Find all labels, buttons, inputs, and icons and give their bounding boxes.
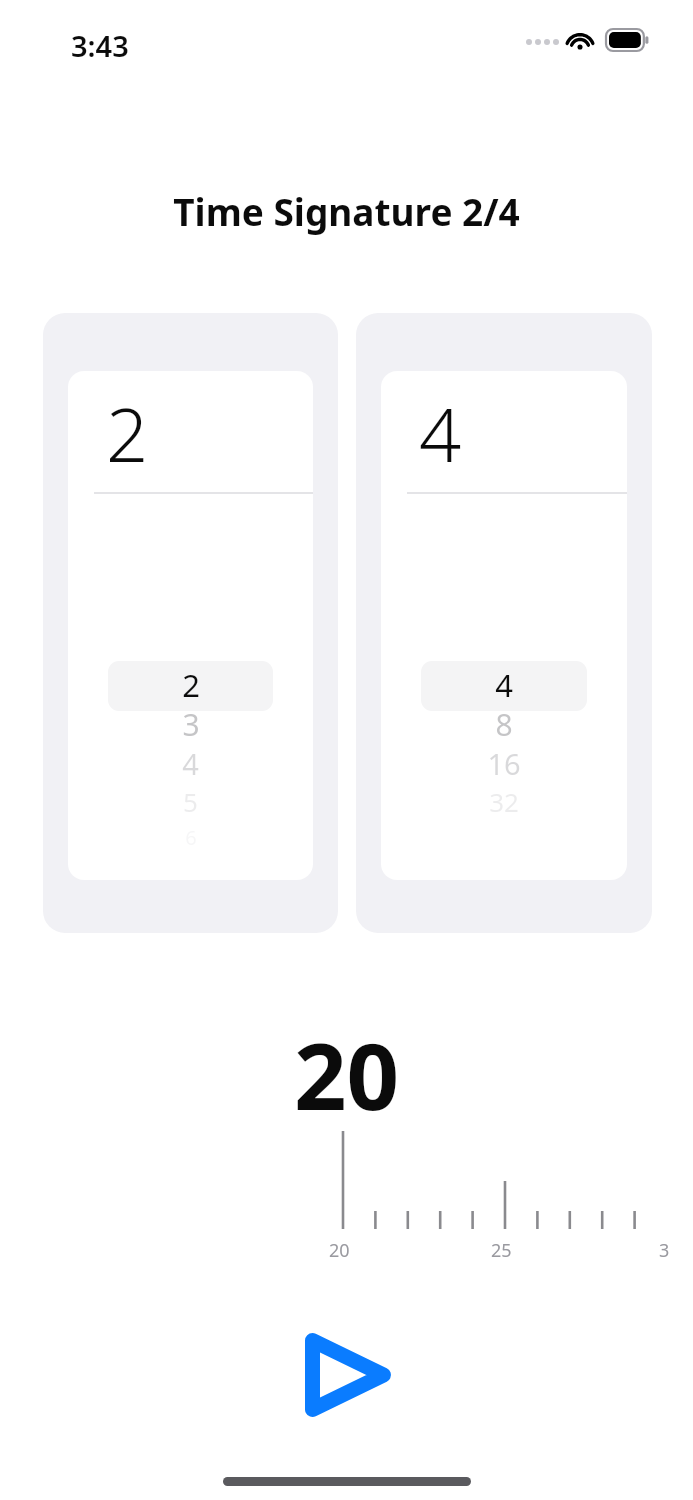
staticText: 16 (487, 744, 521, 783)
button[interactable]: 3 (68, 704, 313, 744)
button[interactable]: 2 (68, 664, 313, 704)
staticText: 25 (491, 1238, 512, 1263)
staticText: 8 (495, 704, 513, 744)
staticText: 4 (182, 744, 199, 783)
button[interactable]: 16 (381, 744, 627, 784)
staticText: 20 (329, 1238, 350, 1263)
staticText: 20 (0, 1012, 693, 1137)
staticText: 4 (495, 664, 513, 704)
staticText: Time Signature 2/4 (0, 186, 693, 236)
staticText: 32 (489, 784, 519, 819)
staticText: 4 (419, 383, 462, 484)
staticText: 3:43 (71, 26, 129, 65)
button[interactable]: 4 (381, 664, 627, 704)
button[interactable]: 4 (68, 744, 313, 784)
staticText: 3 (182, 704, 200, 744)
staticText: 2 (106, 383, 149, 484)
staticText: 5 (183, 784, 198, 819)
button[interactable]: Beats per measure (43, 313, 338, 933)
staticText: 3 (659, 1238, 670, 1263)
button[interactable]: Play (290, 1322, 406, 1428)
button[interactable]: Tempo ruler (300, 1125, 693, 1265)
button[interactable]: Note value (356, 313, 652, 933)
button[interactable]: 8 (381, 704, 627, 744)
staticText: 2 (182, 664, 200, 704)
